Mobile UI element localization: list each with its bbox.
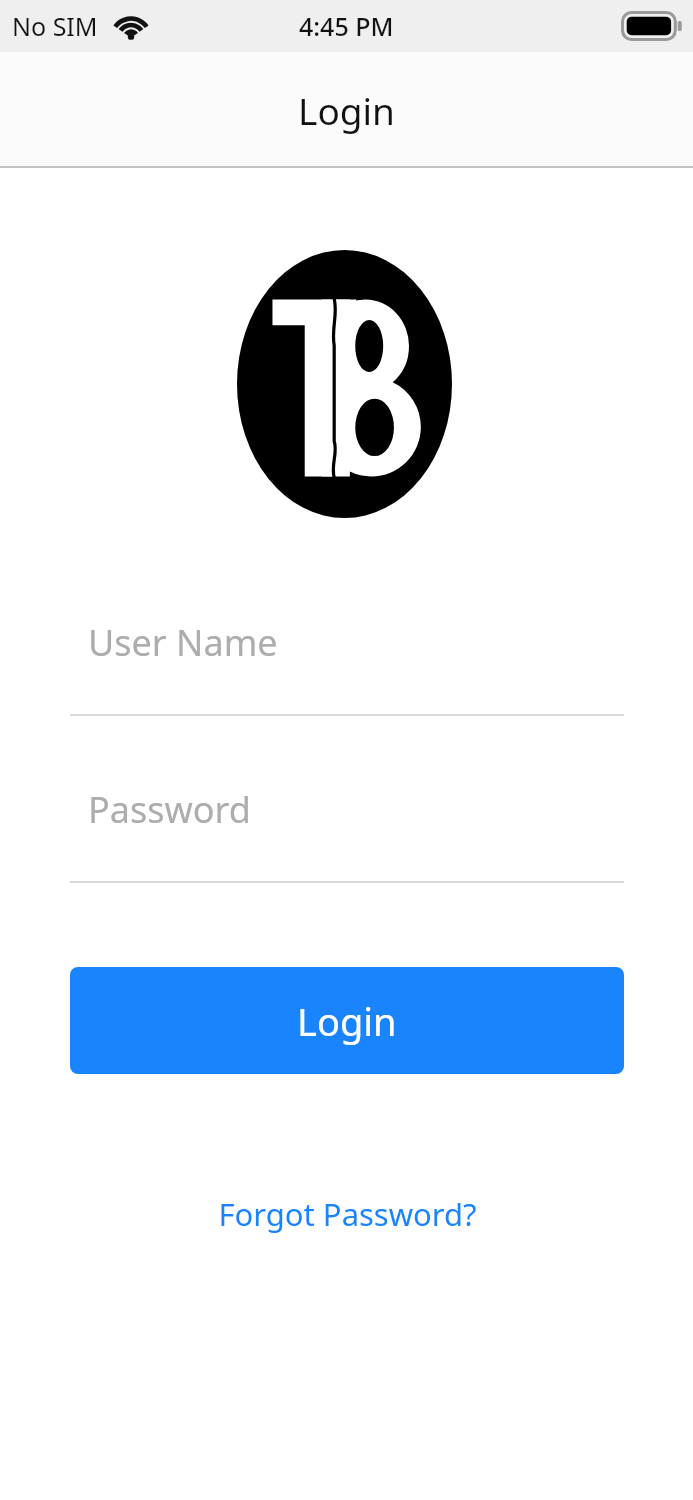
staticText: 4:45 PM [299,9,394,43]
button[interactable]: Login [70,967,624,1074]
button[interactable]: Password [70,778,624,883]
staticText: No SIM [12,9,98,43]
staticText: Password [88,785,251,834]
staticText: Login [298,85,395,135]
staticText: Login [297,995,397,1047]
staticText: Forgot Password? [218,1193,477,1235]
button[interactable]: User Name [70,611,624,716]
staticText: User Name [88,618,278,667]
button[interactable]: Forgot Password? [70,1184,624,1244]
